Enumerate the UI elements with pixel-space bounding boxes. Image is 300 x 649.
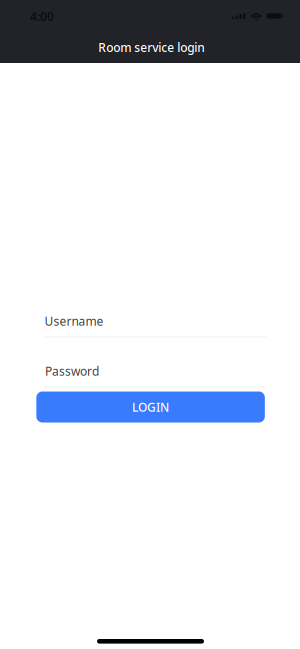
staticText: Room service login [98, 39, 205, 55]
button[interactable]: LOGIN [36, 391, 265, 422]
staticText: LOGIN [132, 399, 169, 415]
button[interactable]: Password [44, 361, 266, 389]
staticText: Password [45, 363, 99, 379]
staticText: 4:00 [30, 8, 54, 24]
staticText: Username [44, 313, 103, 329]
button[interactable]: Username [44, 311, 266, 339]
